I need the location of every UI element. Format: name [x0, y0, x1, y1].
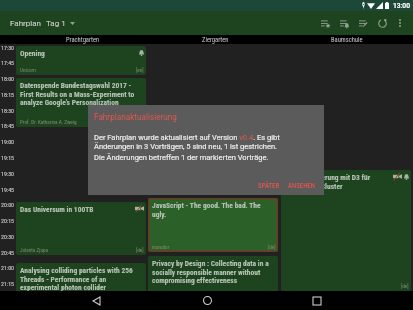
staticText: Der Fahrplan wurde aktualisiert auf Vers…	[94, 133, 284, 151]
staticText: 20:15	[1, 218, 16, 225]
staticText: Fahrplan	[10, 19, 41, 28]
button[interactable]: Show alarms	[335, 14, 354, 33]
button[interactable]: Refresh	[373, 14, 392, 33]
staticText: Baumschule	[331, 36, 363, 44]
staticText: [en]	[136, 67, 144, 73]
staticText: 21:00	[1, 265, 16, 272]
button[interactable]: ANSEHEN	[284, 180, 319, 192]
staticText: 19:15	[1, 155, 16, 162]
staticText: Ziergarten	[202, 36, 229, 44]
staticText: 17:45	[1, 60, 16, 67]
button[interactable]: Opening	[16, 46, 146, 75]
staticText: Opening	[20, 49, 137, 58]
staticText: Unicorn	[20, 67, 136, 73]
staticText: Analysing colliding particles with 256 T…	[20, 266, 144, 292]
button[interactable]: Show changes	[354, 14, 373, 33]
staticText: Jolanta Zjupa	[20, 247, 136, 253]
staticText: Tag 1	[46, 19, 66, 28]
staticText: 19:45	[1, 187, 16, 194]
staticText: ANSEHEN	[288, 182, 315, 190]
staticText: 18:00	[1, 76, 16, 83]
staticText: [de]	[136, 247, 144, 253]
button[interactable]: More options	[392, 15, 408, 31]
button[interactable]: Tag 1	[45, 16, 76, 31]
staticText: Privacy by Design : Collecting data in a…	[152, 259, 276, 285]
button[interactable]: Privacy by Design : Collecting data in a…	[148, 256, 278, 310]
staticText: 21:15	[1, 281, 16, 288]
staticText: Datenspende Bundestagswahl 2017 - First …	[20, 81, 144, 107]
button[interactable]: Analysing colliding particles with 256 T…	[16, 263, 146, 310]
staticText: 18:30	[1, 108, 16, 115]
staticText: Containerisierung mit D3 für Kubernetes …	[285, 173, 391, 191]
staticText: marudor	[152, 244, 268, 250]
button[interactable]: Datenspende Bundestagswahl 2017 - First …	[16, 78, 146, 127]
staticText: 20:00	[1, 202, 16, 209]
button: Fahrplanaktualisierung	[88, 105, 324, 195]
staticText	[152, 302, 276, 308]
staticText: Fahrplanaktualisierung	[94, 112, 177, 122]
staticText: Prof. Dr. Katharina A. Zweig	[20, 119, 144, 125]
staticText: 20:30	[1, 234, 16, 241]
staticText: 18:15	[1, 92, 16, 99]
staticText: [de]	[268, 244, 276, 250]
staticText: JavaScript - The good. The bad. The ugly…	[152, 201, 276, 219]
button[interactable]: SPÄTER	[254, 180, 284, 192]
staticText: 13:00	[393, 2, 410, 10]
staticText: Das Universum in 100TB	[20, 205, 133, 214]
staticText: Die Änderungen betreffen 1 der markierte…	[94, 153, 284, 162]
button[interactable]: Back	[81, 291, 111, 310]
button[interactable]: Recent apps	[302, 291, 332, 310]
button[interactable]: Home	[192, 291, 222, 310]
button[interactable]: JavaScript - The good. The bad. The ugly…	[148, 198, 278, 252]
button[interactable]: Containerisierung mit D3 für Kubernetes …	[281, 170, 411, 291]
staticText: Prachtgarten	[66, 36, 100, 44]
staticText	[20, 303, 136, 309]
staticText: 18:45	[1, 123, 16, 130]
staticText: [de]	[401, 283, 409, 289]
staticText: 20:45	[1, 250, 16, 257]
staticText: 19:00	[1, 139, 16, 146]
staticText: 19:30	[1, 171, 16, 178]
staticText: 17:30	[1, 45, 16, 52]
button[interactable]: Das Universum in 100TB	[16, 202, 146, 255]
button[interactable]: Show favorites	[316, 14, 335, 33]
staticText: SPÄTER	[258, 182, 280, 190]
